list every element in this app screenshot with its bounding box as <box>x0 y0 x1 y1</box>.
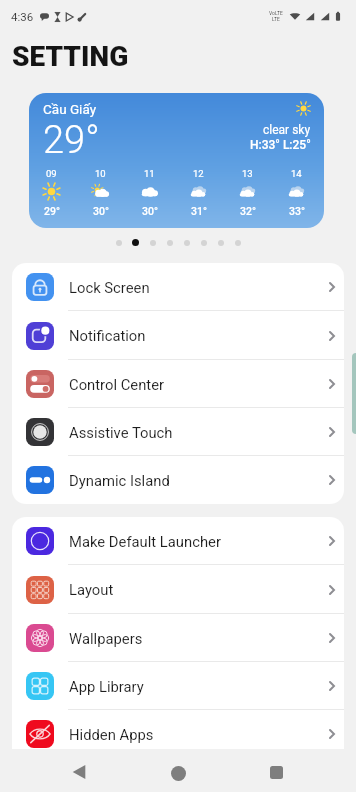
staticText: 4:36 <box>11 10 34 23</box>
staticText: Notification <box>69 327 146 344</box>
button[interactable]: App Library <box>12 662 344 710</box>
staticText: 31° <box>191 205 207 217</box>
staticText: 33° <box>289 205 305 217</box>
button[interactable]: Control Center <box>12 360 344 408</box>
staticText: clear sky <box>263 123 311 137</box>
staticText: 30° <box>93 205 109 217</box>
staticText: Lock Screen <box>69 279 150 296</box>
staticText: Dynamic Island <box>69 472 170 489</box>
staticText: 09 <box>46 168 57 179</box>
staticText: Make Default Launcher <box>69 533 221 550</box>
staticText: App Library <box>69 678 144 695</box>
staticText: 29° <box>44 205 60 217</box>
button[interactable]: Cầu Giấy <box>29 93 324 228</box>
staticText: Assistive Touch <box>69 424 173 441</box>
button[interactable]: Make Default Launcher <box>12 517 344 565</box>
staticText: 30° <box>142 205 158 217</box>
button[interactable]: Layout <box>12 565 344 614</box>
button[interactable]: Recents <box>256 752 296 792</box>
button[interactable]: Wallpapers <box>12 614 344 662</box>
staticText: 32° <box>240 205 256 217</box>
staticText: Wallpapers <box>69 630 143 647</box>
staticText: H:33° L:25° <box>250 138 311 152</box>
staticText: 14 <box>291 168 302 179</box>
button[interactable]: Assistive Touch <box>12 408 344 456</box>
staticText: 11 <box>144 168 155 179</box>
staticText: SETTING <box>12 40 129 73</box>
button[interactable]: Notification <box>12 311 344 360</box>
staticText: Hidden Apps <box>69 726 154 743</box>
staticText: 10 <box>95 168 106 179</box>
button[interactable]: Dynamic Island <box>12 456 344 504</box>
button[interactable]: Back <box>59 752 99 792</box>
button[interactable]: Lock Screen <box>12 263 344 311</box>
staticText: VoLTE <box>269 10 283 16</box>
staticText: 13 <box>242 168 253 179</box>
staticText: Layout <box>69 581 114 598</box>
staticText: 29° <box>43 118 100 163</box>
button[interactable]: Home <box>158 753 198 792</box>
button[interactable]: Hidden Apps <box>12 710 344 758</box>
staticText: 12 <box>193 168 204 179</box>
staticText: Control Center <box>69 376 165 393</box>
staticText: Cầu Giấy <box>43 101 97 117</box>
staticText: LTE <box>272 16 280 22</box>
